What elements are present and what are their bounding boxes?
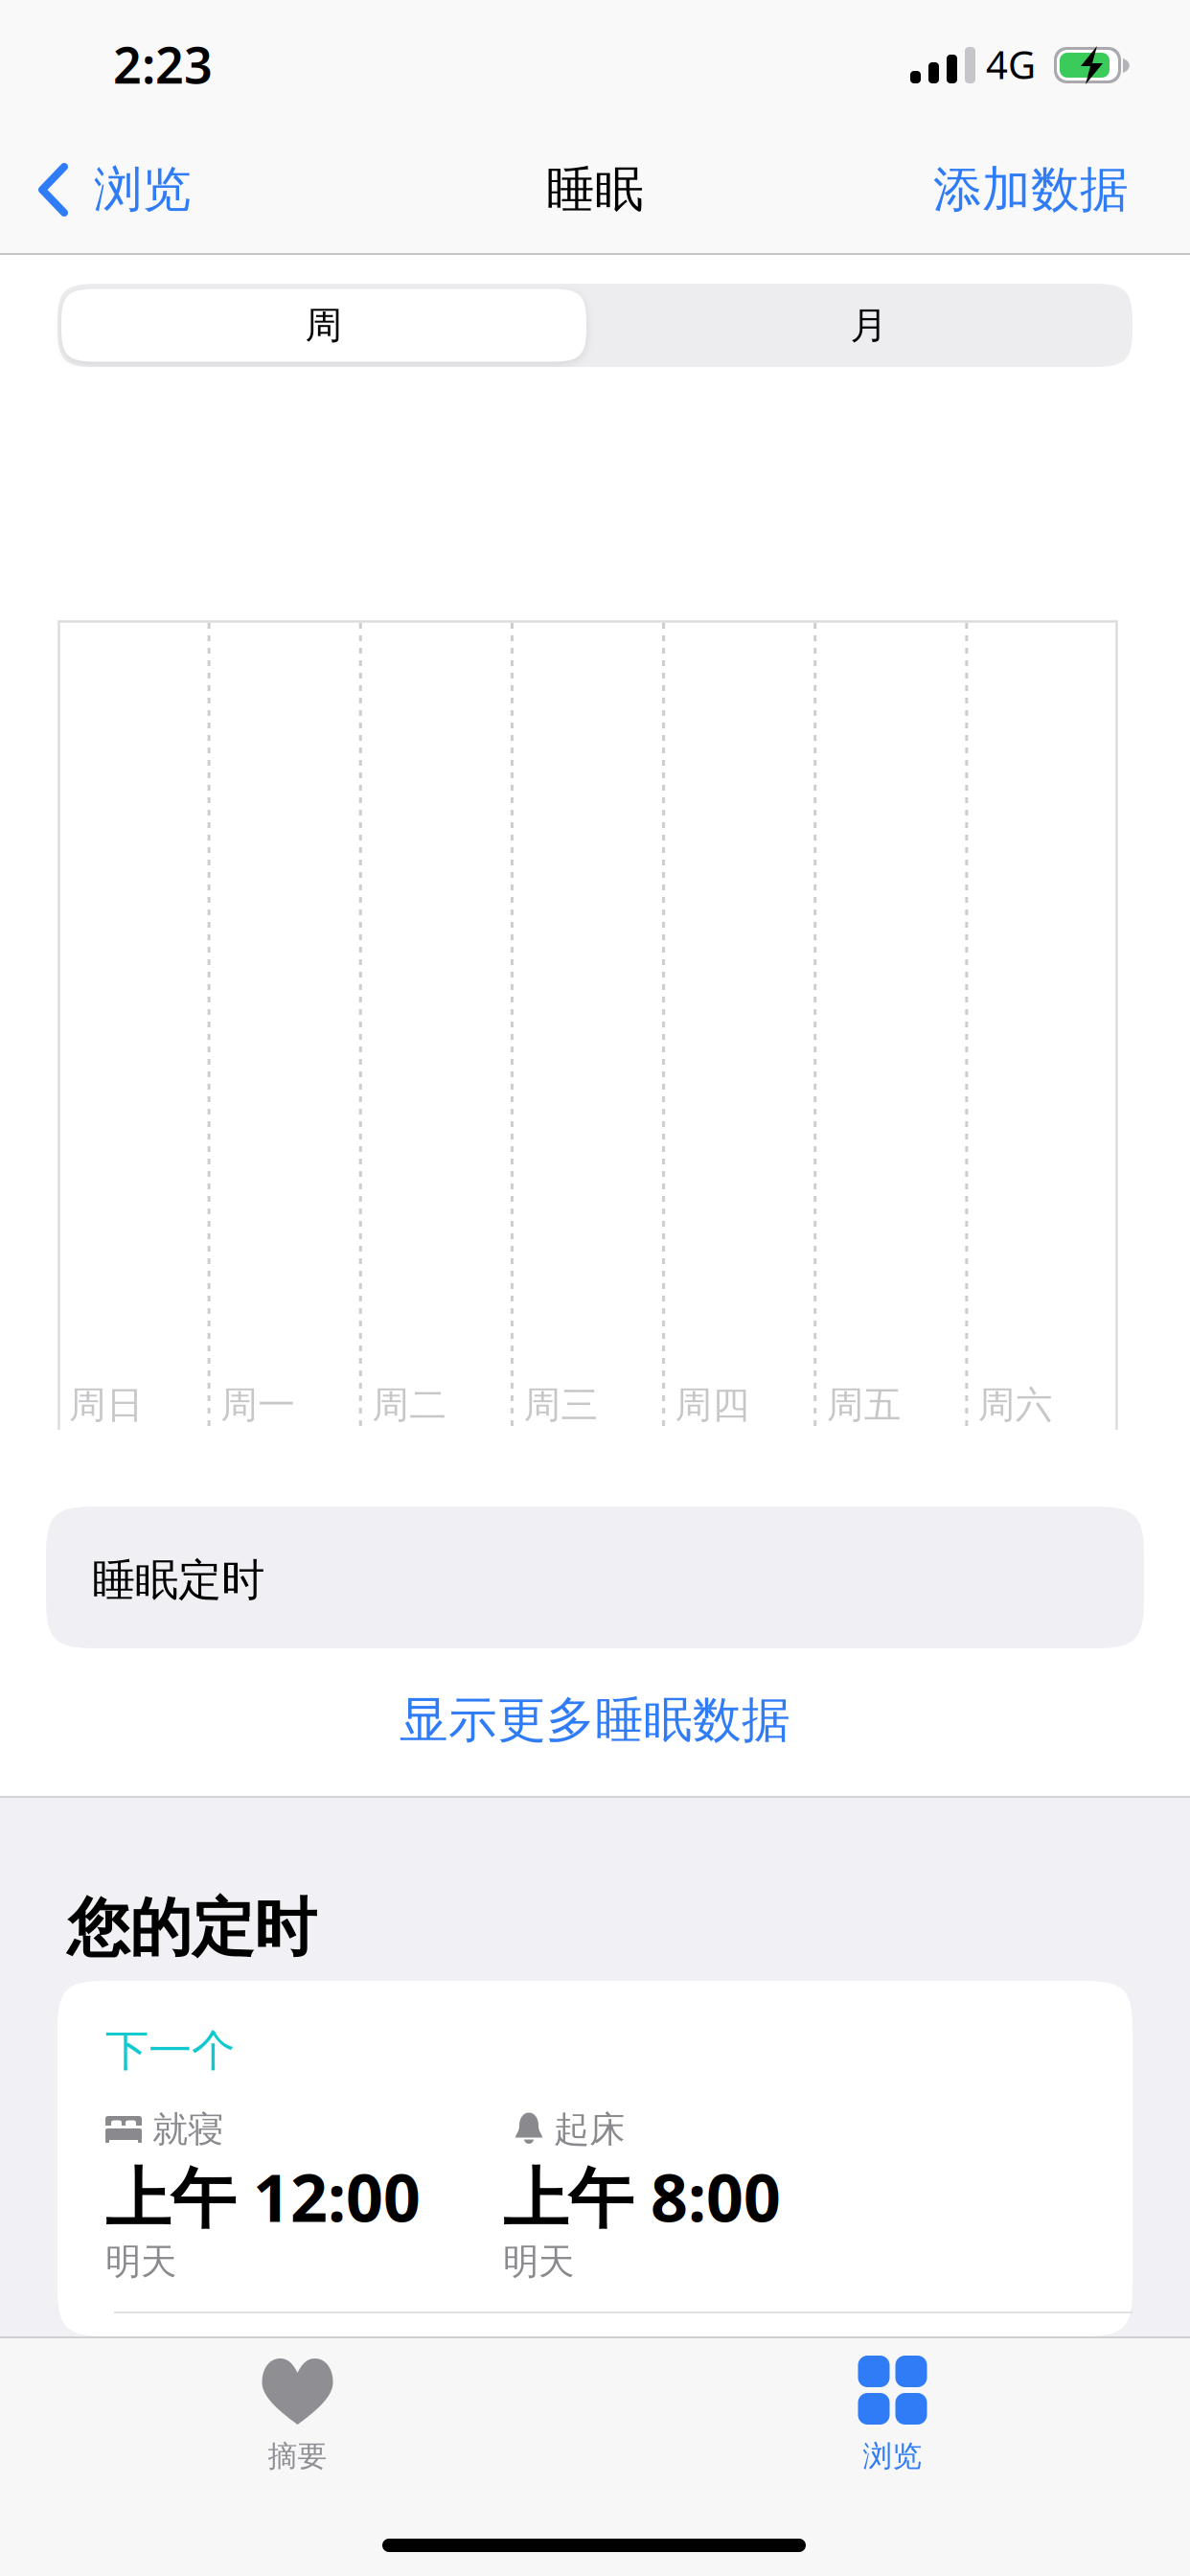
staticText: 明天 — [105, 2240, 176, 2284]
button[interactable]: 浏览 — [595, 2338, 1190, 2492]
staticText: 摘要 — [268, 2438, 327, 2474]
staticText: 就寝 — [152, 2107, 223, 2151]
staticText: 浏览 — [863, 2438, 922, 2474]
staticText: 周五 — [827, 1382, 901, 1428]
staticText: 4G — [986, 39, 1036, 90]
staticText: 周 — [305, 303, 343, 348]
staticText: 睡眠定时 — [92, 1554, 264, 1607]
button[interactable]: 月 — [57, 284, 1133, 367]
staticText: 周日 — [69, 1382, 144, 1428]
button[interactable]: 添加数据 — [906, 126, 1190, 253]
staticText: 周四 — [675, 1382, 750, 1428]
button[interactable]: 显示更多睡眠数据 — [0, 1672, 1190, 1768]
button[interactable]: 浏览 — [0, 126, 218, 253]
button[interactable]: 周 — [57, 289, 586, 362]
button[interactable]: 摘要 — [0, 2338, 595, 2492]
staticText: 月 — [850, 303, 888, 348]
staticText: 上午 12:00 — [105, 2153, 421, 2240]
staticText: 周六 — [978, 1382, 1053, 1428]
staticText: 上午 8:00 — [503, 2153, 781, 2240]
staticText: 周一 — [220, 1382, 295, 1428]
staticText: 您的定时 — [67, 1890, 316, 1967]
staticText: 浏览 — [94, 160, 192, 220]
staticText: 睡眠 — [546, 160, 644, 220]
staticText: 起床 — [554, 2107, 625, 2151]
staticText: 周三 — [524, 1382, 598, 1428]
staticText: 下一个 — [105, 2024, 235, 2078]
staticText: 显示更多睡眠数据 — [400, 1690, 790, 1750]
staticText: 添加数据 — [933, 160, 1129, 220]
staticText: 2:23 — [113, 31, 213, 97]
staticText: 明天 — [503, 2240, 574, 2284]
staticText: 周二 — [372, 1382, 447, 1428]
